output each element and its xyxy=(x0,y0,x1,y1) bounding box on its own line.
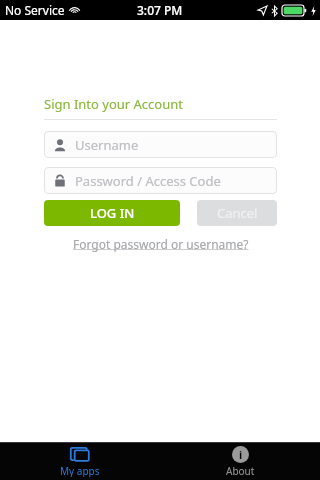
staticText: No Service xyxy=(5,2,65,18)
button[interactable]: Cancel xyxy=(197,200,277,226)
button[interactable]: About xyxy=(160,443,320,480)
button[interactable]: Forgot password or username? xyxy=(44,236,277,252)
button[interactable]: Username xyxy=(44,131,277,158)
staticText: Forgot password or username? xyxy=(73,236,249,252)
button[interactable]: My apps xyxy=(0,443,160,480)
staticText: i xyxy=(239,447,243,462)
staticText: 3:07 PM xyxy=(137,2,183,18)
staticText: My apps xyxy=(60,464,100,477)
button[interactable]: LOG IN xyxy=(44,200,180,226)
staticText: Password / Access Code xyxy=(75,172,221,190)
staticText: LOG IN xyxy=(90,204,135,222)
button[interactable]: Password / Access Code xyxy=(44,167,277,194)
staticText: Username xyxy=(75,136,139,154)
staticText: About xyxy=(226,464,255,477)
staticText: Sign Into your Account xyxy=(44,95,183,113)
staticText: Cancel xyxy=(217,204,258,222)
other: About xyxy=(232,446,249,463)
